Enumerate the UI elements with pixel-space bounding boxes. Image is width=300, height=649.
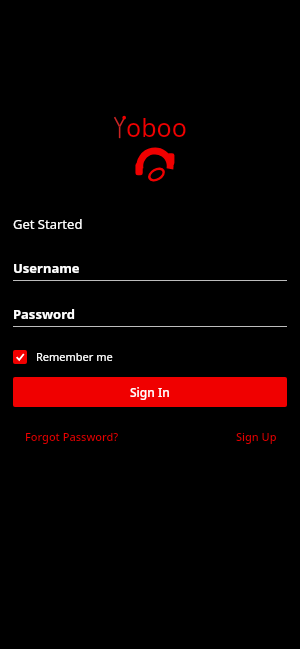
staticText: Remember me [36,349,113,364]
button[interactable]: Username [0,259,300,281]
staticText: Password [13,305,75,323]
button[interactable]: Remember me [13,349,113,364]
staticText: Sign In [130,384,170,400]
button[interactable]: Password [0,305,300,327]
button[interactable]: Sign In [13,377,287,407]
staticText: Sign Up [236,429,277,444]
staticText: Get Started [13,215,83,233]
staticText: oboo [126,110,187,144]
button[interactable]: Forgot Password? [25,429,119,444]
staticText: Username [13,259,80,277]
button[interactable]: Sign Up [236,429,277,444]
staticText: Forgot Password? [25,429,119,444]
